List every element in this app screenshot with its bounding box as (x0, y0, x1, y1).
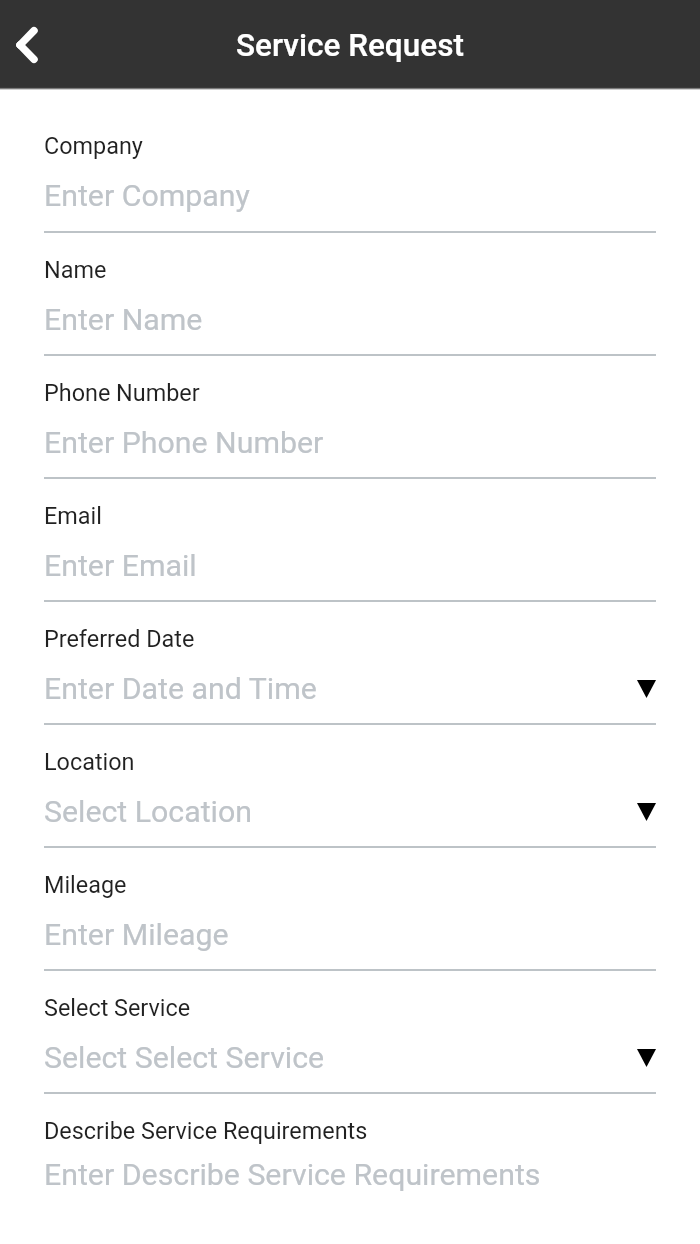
staticText: Enter Email (44, 548, 656, 584)
staticText: Enter Name (44, 302, 656, 338)
button[interactable]: Mileage (44, 848, 656, 971)
staticText: Enter Company (44, 178, 656, 214)
staticText: Describe Service Requirements (44, 1117, 368, 1144)
button[interactable]: Location (44, 725, 656, 848)
staticText: Enter Mileage (44, 917, 656, 953)
staticText: Name (44, 256, 107, 283)
button[interactable]: Name (44, 233, 656, 356)
staticText: Select Service (44, 994, 191, 1021)
staticText: Enter Phone Number (44, 425, 656, 461)
button[interactable]: Back (0, 18, 54, 72)
staticText: Phone Number (44, 379, 200, 406)
staticText: Company (44, 132, 143, 159)
button[interactable]: Company (44, 90, 656, 233)
staticText: Enter Date and Time (44, 671, 637, 707)
button[interactable]: Select Service (44, 971, 656, 1094)
button[interactable]: Email (44, 479, 656, 602)
staticText: Select Select Service (44, 1040, 637, 1076)
staticText: Location (44, 748, 135, 775)
staticText: Preferred Date (44, 625, 195, 652)
button[interactable]: Phone Number (44, 356, 656, 479)
staticText: Select Location (44, 794, 637, 830)
staticText: Email (44, 502, 102, 529)
staticText: Enter Describe Service Requirements (44, 1157, 656, 1193)
staticText: Mileage (44, 871, 127, 898)
button[interactable]: Preferred Date (44, 602, 656, 725)
staticText: Service Request (236, 27, 464, 64)
button[interactable]: Describe Service Requirements (44, 1094, 656, 1217)
